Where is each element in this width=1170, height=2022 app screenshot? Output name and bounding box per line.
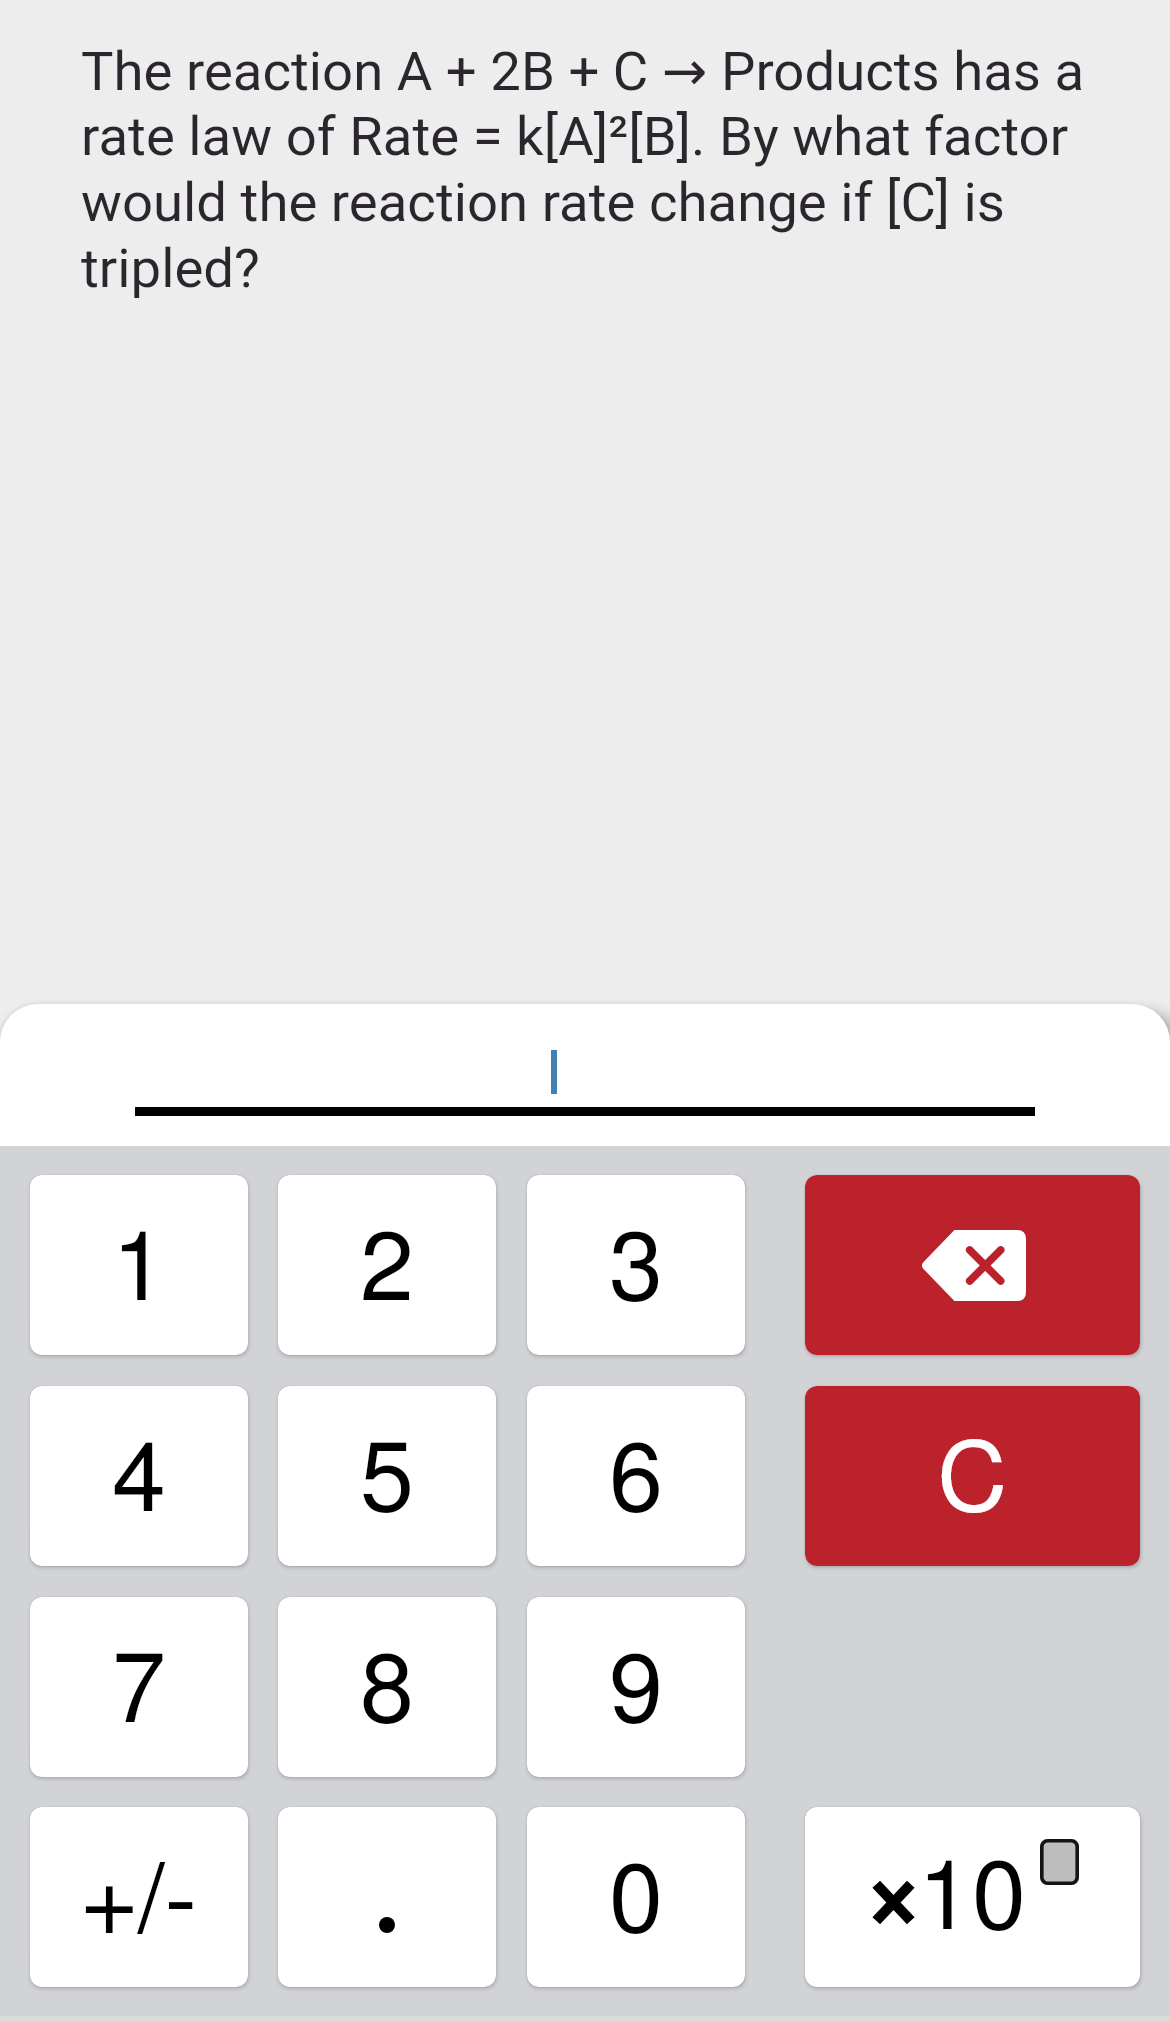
button[interactable]: 4 (30, 1386, 248, 1566)
button[interactable]: 5 (278, 1386, 496, 1566)
staticText: 5 (360, 1433, 414, 1530)
staticText: 3 (609, 1222, 663, 1319)
staticText: 1 (112, 1222, 166, 1319)
staticText: 2 (360, 1222, 414, 1319)
button[interactable]: 2 (278, 1175, 496, 1355)
staticText: 8 (360, 1644, 414, 1741)
button[interactable]: 3 (527, 1175, 745, 1355)
button[interactable]: C (805, 1386, 1140, 1566)
button[interactable]: 1 (30, 1175, 248, 1355)
staticText: 9 (609, 1644, 663, 1741)
button[interactable]: +/- (30, 1807, 248, 1987)
staticText: C (938, 1433, 1007, 1530)
button[interactable]: Decimal point (278, 1807, 496, 1987)
staticText: 0 (609, 1854, 663, 1951)
button[interactable]: Backspace (805, 1175, 1140, 1355)
button[interactable]: 9 (527, 1597, 745, 1777)
staticText: +/- (81, 1854, 197, 1951)
staticText: 7 (112, 1644, 166, 1741)
button[interactable]: 7 (30, 1597, 248, 1777)
button[interactable]: 0 (527, 1807, 745, 1987)
button[interactable]: 6 (527, 1386, 745, 1566)
staticText: The reaction A + 2B + C → Products has a… (81, 39, 1101, 300)
staticText: 4 (112, 1433, 166, 1530)
button[interactable]: Times ten to the power of (805, 1807, 1140, 1987)
button[interactable]: 8 (278, 1597, 496, 1777)
staticText: 6 (609, 1433, 663, 1530)
staticText: 10 (918, 1851, 1026, 1948)
